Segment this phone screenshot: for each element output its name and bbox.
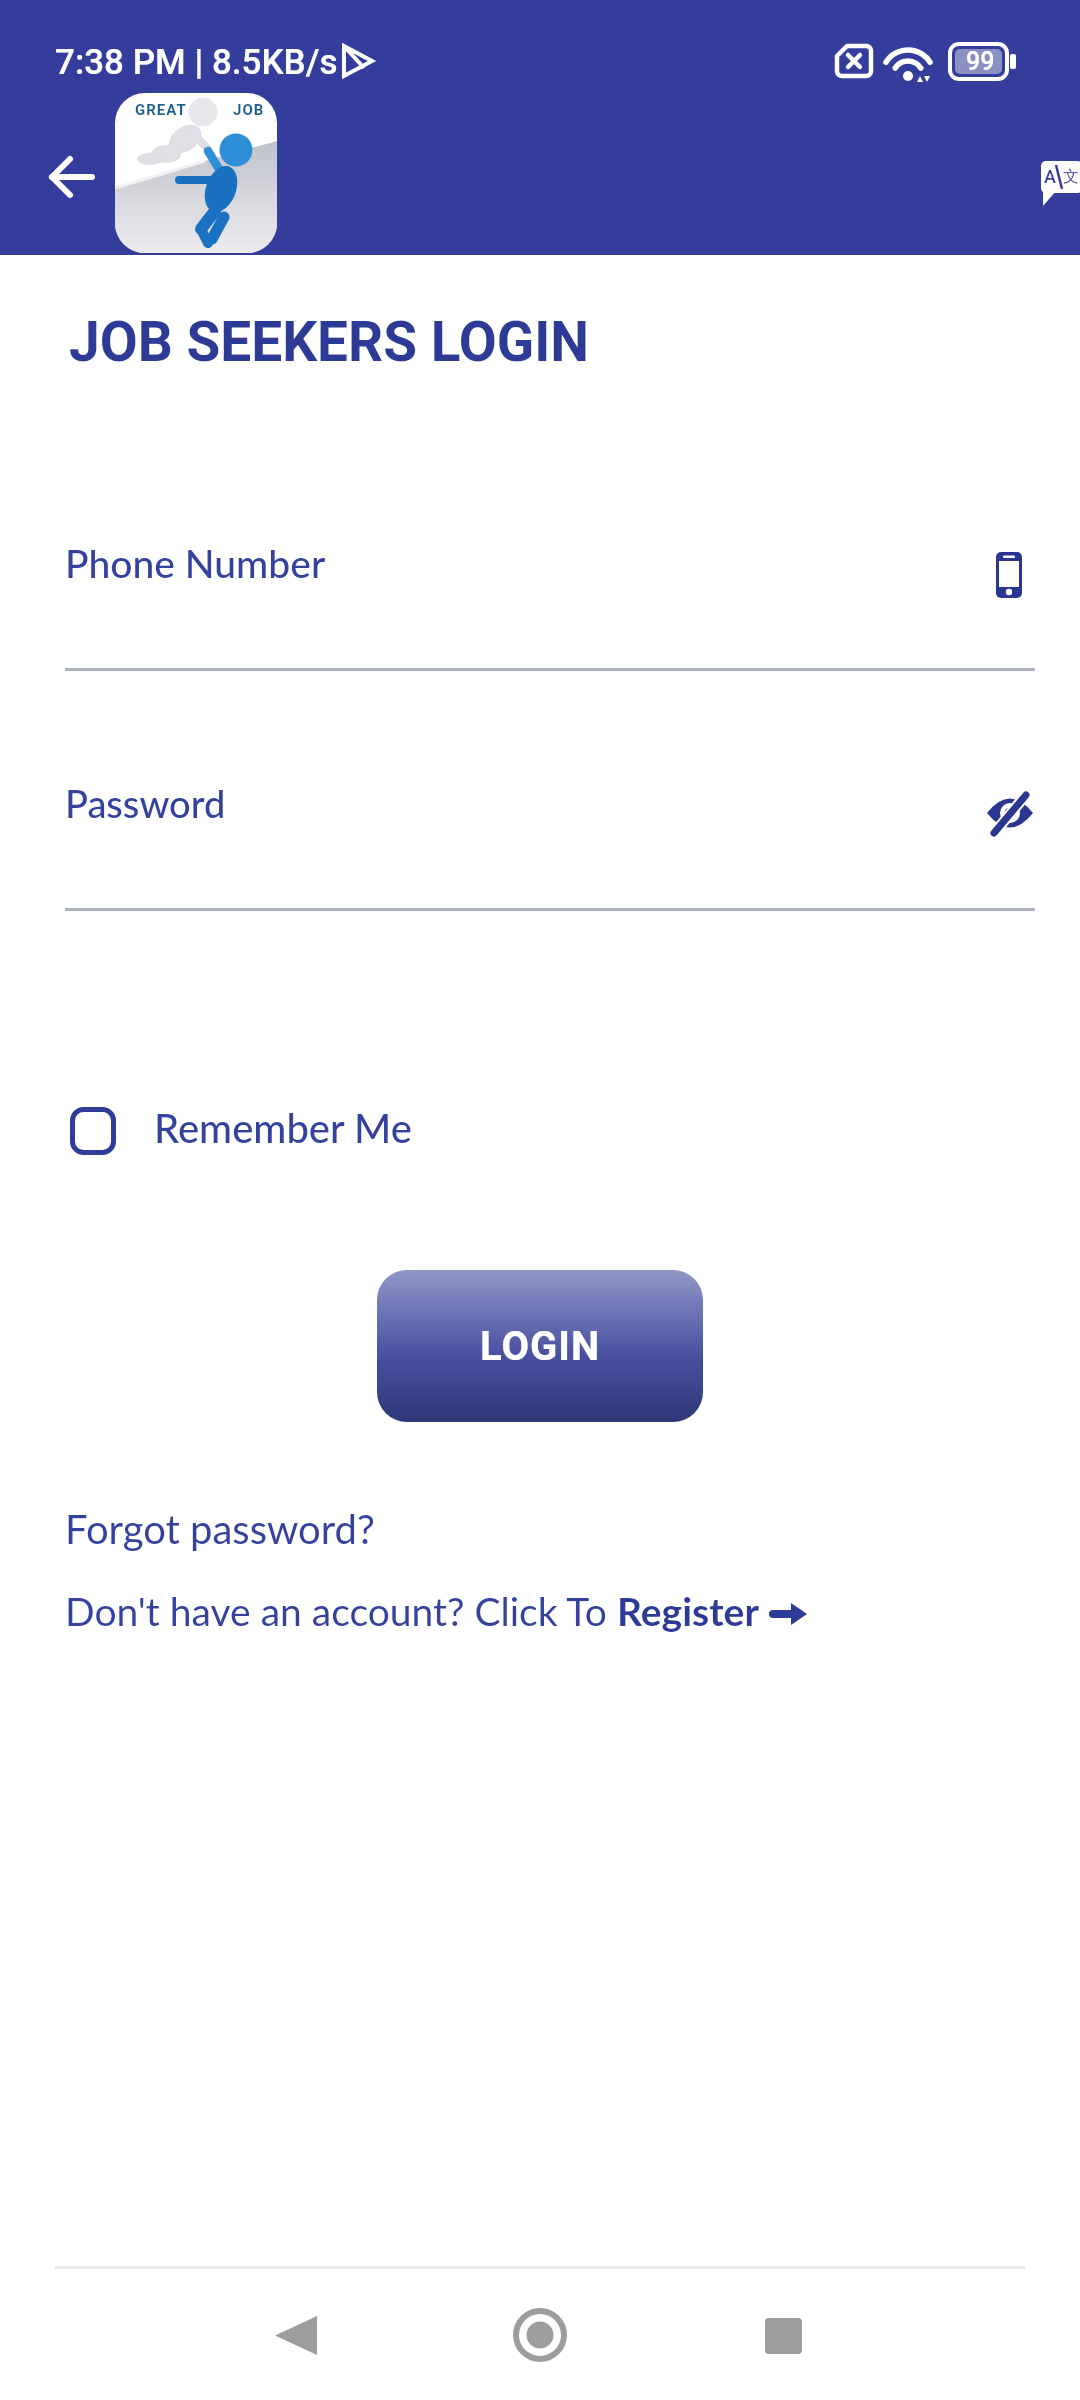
button[interactable] (30, 146, 110, 208)
button[interactable]: Forgot password? (55, 1495, 385, 1565)
staticText: A (1044, 166, 1056, 187)
staticText: GREAT (135, 101, 187, 119)
staticText: Phone Number (65, 540, 326, 587)
button[interactable]: A (1036, 155, 1080, 210)
staticText: Remember Me (154, 1104, 412, 1152)
staticText: JOB SEEKERS LOGIN (69, 310, 590, 374)
staticText: Register (617, 1588, 759, 1635)
button[interactable] (490, 2295, 590, 2380)
button[interactable]: LOGIN (377, 1270, 703, 1422)
button[interactable]: Phone Number (55, 525, 1035, 673)
staticText: LOGIN (480, 1323, 601, 1370)
staticText: JOB (233, 101, 265, 119)
button[interactable]: Remember Me (55, 1092, 455, 1168)
staticText: Don't have an account? Click To (65, 1588, 617, 1635)
button[interactable] (245, 2295, 345, 2380)
staticText: 99 (966, 47, 995, 76)
staticText: 7:38 PM | 8.5KB/s (55, 42, 338, 83)
staticText: Password (65, 780, 226, 826)
staticText: Forgot password? (65, 1505, 375, 1553)
button[interactable] (735, 2295, 835, 2380)
staticText: 文 (1063, 167, 1079, 187)
button[interactable]: Don't have an account? Click To (55, 1580, 825, 1644)
button[interactable]: Password (55, 765, 1035, 913)
